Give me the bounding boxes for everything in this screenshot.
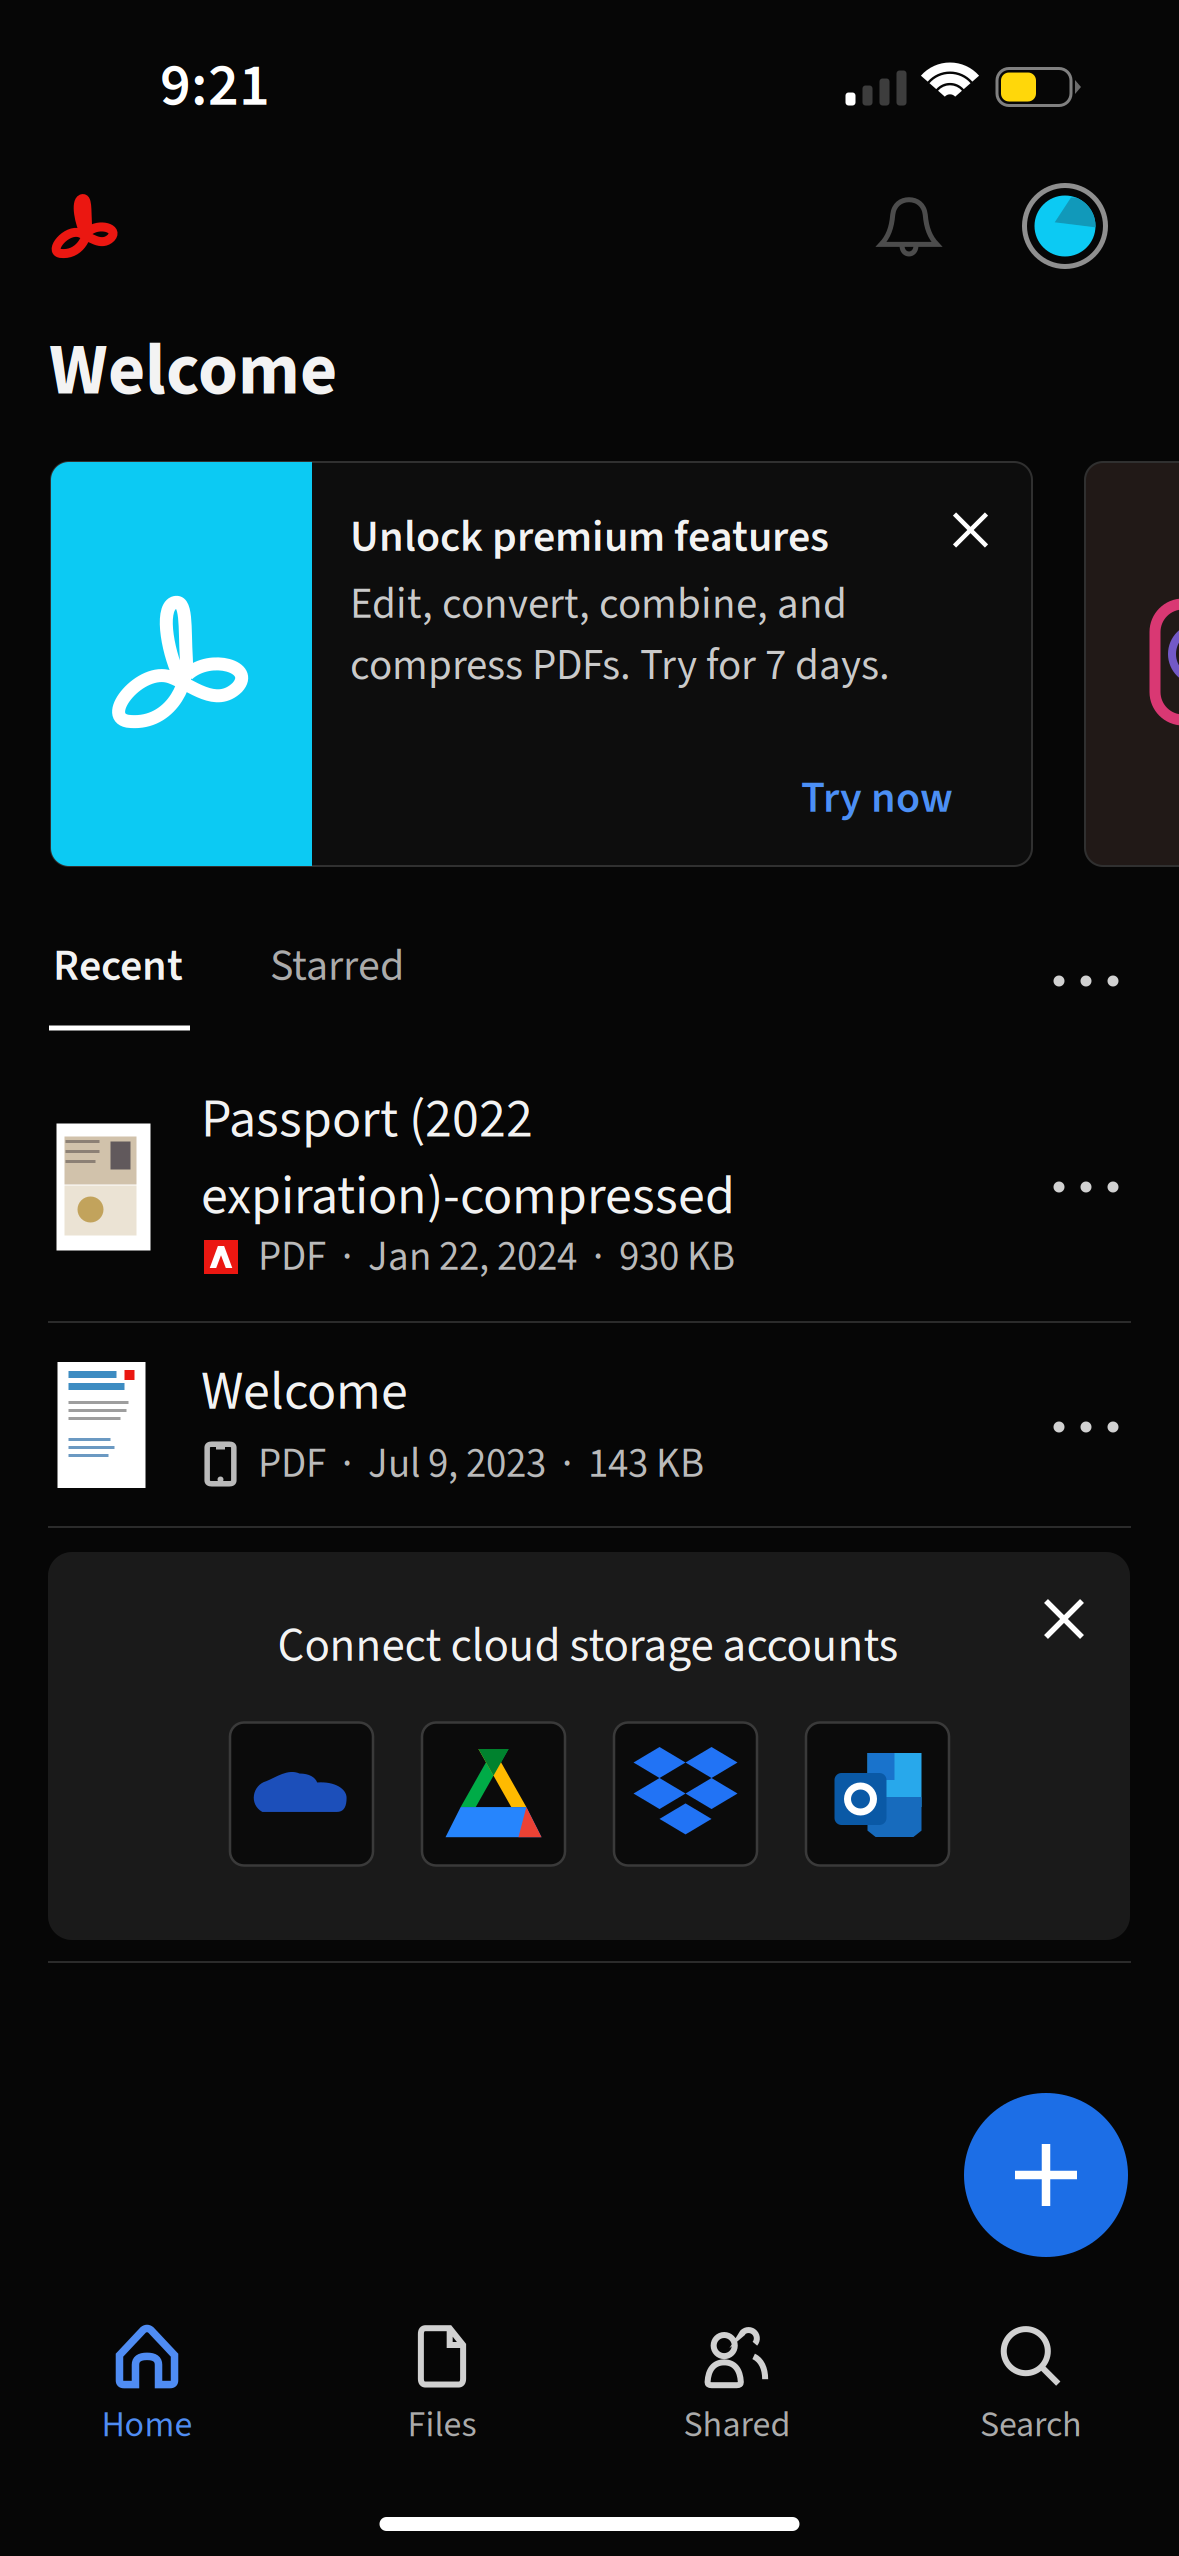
- button[interactable]: More options: [1053, 975, 1118, 986]
- staticText: Files: [407, 2399, 476, 2451]
- button[interactable]: More options for Passport: [1053, 1181, 1118, 1192]
- button[interactable]: Dismiss: [1046, 1601, 1082, 1637]
- button[interactable]: Google Drive: [422, 1722, 565, 1865]
- staticText: Welcome: [49, 320, 337, 422]
- button[interactable]: Dropbox: [614, 1722, 757, 1865]
- button[interactable]: Profile: [1022, 183, 1108, 269]
- button[interactable]: Create: [964, 2093, 1128, 2257]
- button[interactable]: Dismiss premium offer: [954, 514, 986, 546]
- staticText: Passport (2022 expiration)-compressed: [201, 1081, 735, 1235]
- button[interactable]: Files: [327, 2323, 557, 2453]
- staticText: Home: [101, 2399, 192, 2451]
- staticText: 9:21: [160, 43, 270, 129]
- staticText: Welcome: [201, 1354, 408, 1430]
- button[interactable]: Notifications: [880, 196, 938, 258]
- staticText: Connect cloud storage accounts: [277, 1612, 898, 1679]
- button[interactable]: Passport (2022 expiration)-compressed: [0, 1070, 1179, 1304]
- staticText: Search: [980, 2399, 1082, 2451]
- staticText: Edit, convert, combine, and compress PDF…: [350, 574, 890, 696]
- staticText: Unlock premium features: [350, 506, 829, 568]
- button[interactable]: Unlock premium features: [51, 462, 1032, 866]
- button[interactable]: Home: [32, 2323, 262, 2453]
- button[interactable]: Search: [916, 2323, 1146, 2453]
- staticText: Starred: [270, 935, 404, 997]
- button[interactable]: More options for Welcome: [1053, 1421, 1118, 1432]
- button[interactable]: Starred: [270, 934, 530, 998]
- button[interactable]: Outlook: [806, 1722, 949, 1865]
- button[interactable]: Welcome: [0, 1340, 1179, 1510]
- button[interactable]: Recent: [53, 934, 313, 998]
- staticText: Recent: [53, 935, 183, 997]
- button[interactable]: OneDrive: [230, 1722, 373, 1865]
- button[interactable]: Shared: [622, 2323, 852, 2453]
- staticText: PDF · Jul 9, 2023 · 143 KB: [258, 1435, 704, 1493]
- staticText: Shared: [683, 2399, 790, 2451]
- staticText: PDF · Jan 22, 2024 · 930 KB: [258, 1228, 735, 1286]
- staticText: Try now: [801, 767, 953, 829]
